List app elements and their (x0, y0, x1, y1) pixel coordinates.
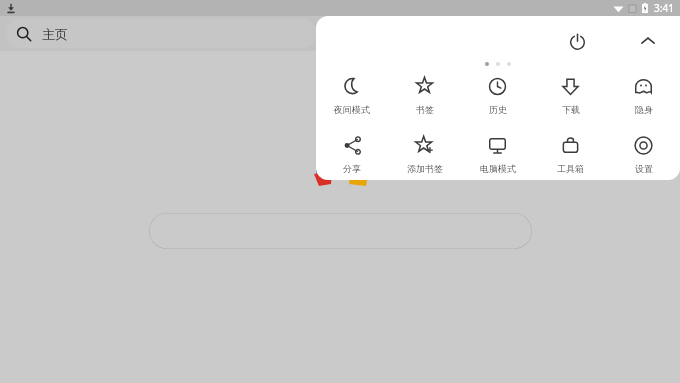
button[interactable]: 夜间模式 (316, 74, 388, 117)
button[interactable]: 添加书签 (388, 133, 461, 176)
staticText: 主页 (42, 26, 68, 42)
staticText: 下载 (562, 104, 580, 115)
button[interactable]: 主页 (6, 19, 316, 48)
staticText: 书签 (416, 104, 434, 115)
button[interactable]: 收起 (631, 24, 665, 58)
staticText: 隐身 (635, 104, 653, 115)
button[interactable]: 历史 (461, 74, 534, 117)
staticText: 电脑模式 (480, 163, 516, 174)
staticText: 分享 (343, 163, 361, 174)
staticText: 添加书签 (407, 163, 443, 174)
button[interactable]: 设置 (607, 133, 680, 176)
button[interactable] (149, 213, 532, 249)
button[interactable]: 书签 (388, 74, 461, 117)
button[interactable]: 隐身 (607, 74, 680, 117)
staticText: 夜间模式 (334, 104, 370, 115)
button[interactable]: 电脑模式 (461, 133, 534, 176)
button[interactable]: 分享 (316, 133, 388, 176)
staticText: 3:41 (654, 1, 674, 15)
button[interactable]: 退出 (560, 24, 594, 58)
staticText: 历史 (489, 104, 507, 115)
button[interactable]: 下载 (534, 74, 607, 117)
button[interactable]: 工具箱 (534, 133, 607, 176)
staticText: 工具箱 (557, 163, 584, 174)
staticText: 设置 (635, 163, 653, 174)
